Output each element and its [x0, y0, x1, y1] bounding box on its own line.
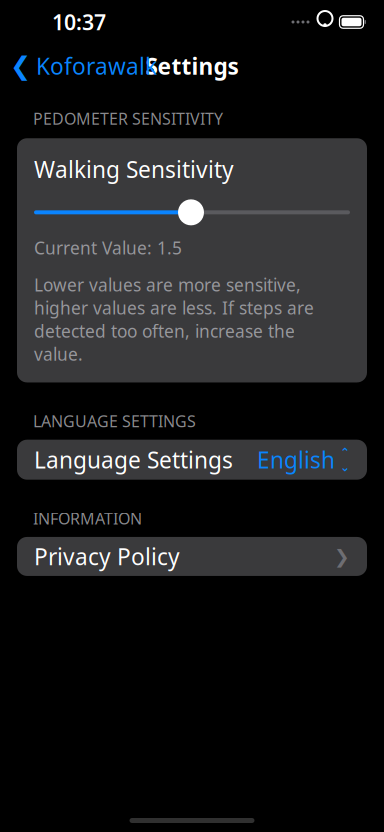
staticText: Lower values are more sensitive, higher …	[34, 273, 314, 365]
button[interactable]: Language Settings	[0, 440, 384, 480]
staticText: Koforawalk	[36, 51, 157, 81]
staticText: Privacy Policy	[34, 541, 180, 571]
staticText: ⌃	[340, 446, 350, 459]
button[interactable]: ❮	[0, 45, 167, 87]
staticText: 10:37	[52, 8, 106, 36]
staticText: Walking Sensitivity	[34, 154, 234, 184]
staticText: PEDOMETER SENSITIVITY	[33, 108, 223, 129]
staticText: Current Value: 1.5	[34, 236, 182, 259]
staticText: LANGUAGE SETTINGS	[33, 410, 196, 432]
button[interactable]: Privacy Policy	[0, 537, 384, 576]
staticText: Language Settings	[34, 445, 233, 475]
staticText: ❯	[334, 546, 350, 567]
staticText: INFORMATION	[33, 508, 142, 529]
staticText: English	[257, 445, 335, 475]
staticText: Settings	[145, 51, 238, 81]
staticText: ❮	[10, 52, 31, 80]
staticText: ⌄	[340, 460, 350, 474]
